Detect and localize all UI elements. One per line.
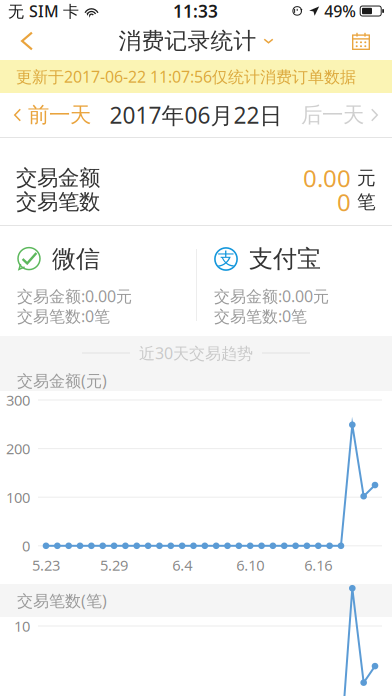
staticText: 前一天 — [28, 102, 91, 128]
button[interactable]: 后一天 — [289, 93, 392, 137]
staticText: 笔 — [357, 190, 376, 213]
button[interactable]: 前一天 — [0, 93, 103, 137]
staticText: 近30天交易趋势 — [139, 342, 253, 364]
staticText: 5.23 — [32, 555, 60, 575]
staticText: 0.00 — [303, 162, 351, 194]
staticText: 更新于2017-06-22 11:07:56仅统计消费订单数据 — [16, 66, 356, 87]
staticText: 200 — [6, 439, 30, 458]
staticText: 交易金额:0.00元 — [214, 285, 329, 307]
staticText: 10 — [14, 616, 30, 636]
staticText: 元 — [357, 166, 376, 189]
staticText: 6.4 — [172, 555, 192, 575]
staticText: 100 — [6, 487, 30, 507]
staticText: 无 SIM 卡 — [8, 0, 79, 22]
staticText: 交易笔数(笔) — [17, 590, 107, 611]
button[interactable]: 返回 — [5, 22, 49, 60]
staticText: 微信 — [52, 244, 100, 274]
staticText: 6.10 — [236, 555, 264, 575]
button[interactable]: 日历 — [339, 22, 383, 60]
staticText: 交易金额:0.00元 — [17, 285, 132, 307]
staticText: 5.29 — [100, 555, 128, 575]
staticText: 交易金额 — [16, 165, 100, 191]
staticText: 11:33 — [173, 0, 218, 22]
staticText: 6.16 — [304, 555, 332, 575]
staticText: 0 — [22, 536, 30, 556]
staticText: 交易笔数:0笔 — [17, 305, 110, 327]
staticText: 交易笔数:0笔 — [214, 305, 307, 327]
staticText: 2017年06月22日 — [109, 100, 282, 130]
staticText: 支付宝 — [249, 244, 321, 274]
staticText: 300 — [6, 390, 30, 410]
staticText: 交易笔数 — [16, 189, 100, 215]
staticText: 0 — [337, 186, 351, 218]
staticText: 49% — [324, 0, 356, 22]
button[interactable]: 消费记录统计 — [118, 22, 273, 60]
staticText: 支 — [217, 248, 234, 270]
staticText: 消费记录统计 — [118, 27, 256, 55]
staticText: 交易金额(元) — [17, 370, 107, 391]
staticText: 后一天 — [301, 102, 364, 128]
